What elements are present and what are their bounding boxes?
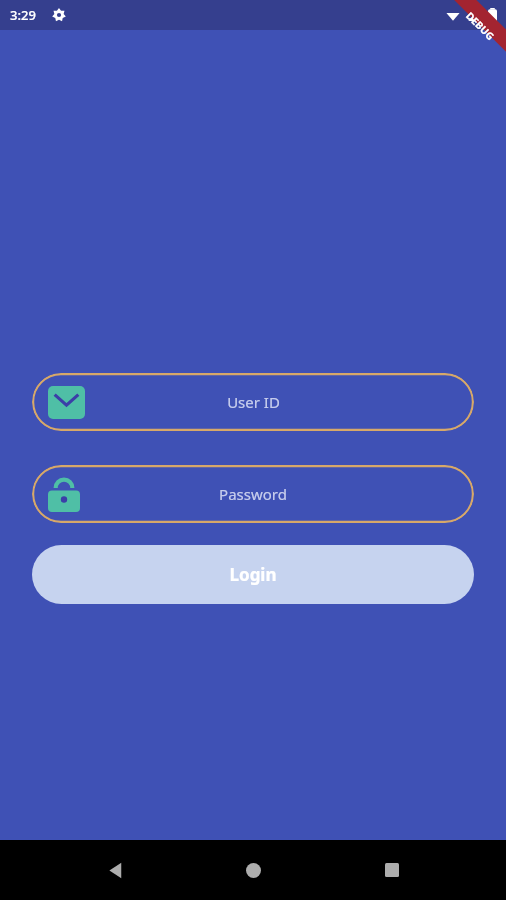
staticText: DEBUG [463, 9, 498, 43]
other: Debug banner [432, 0, 506, 74]
staticText: Password [219, 484, 287, 504]
button[interactable]: Back [91, 846, 139, 894]
button[interactable]: Password [32, 465, 474, 523]
button[interactable]: Login [32, 545, 474, 604]
staticText: Login [229, 563, 277, 586]
button[interactable]: Recents [368, 846, 416, 894]
staticText: 3:29 [10, 6, 36, 24]
button[interactable]: Home [229, 846, 277, 894]
staticText: User ID [227, 392, 280, 412]
button[interactable]: User ID [32, 373, 474, 431]
